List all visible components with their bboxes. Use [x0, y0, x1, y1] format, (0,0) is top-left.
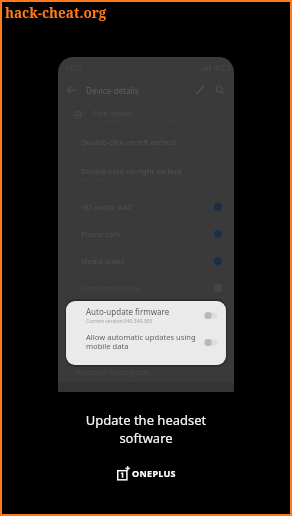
button[interactable]: Media audio [58, 250, 234, 272]
staticText: Allow automatic updates using mobile dat… [86, 332, 204, 352]
button[interactable]: Auto-update firmware [66, 302, 226, 328]
button[interactable]: HD audio: AAC [58, 196, 234, 218]
staticText: Function Description [77, 367, 150, 377]
button[interactable]: Allow automatic updates using mobile dat… [66, 329, 226, 355]
other: Search [215, 85, 225, 95]
staticText: Find device [93, 108, 133, 118]
button[interactable]: Phone calls [58, 223, 234, 245]
other: Back [66, 84, 78, 96]
staticText: Auto-update firmware [86, 306, 170, 317]
staticText: Update the headset software [0, 411, 292, 447]
other: Edit [195, 85, 205, 95]
staticText: Current version:340.340.305 [86, 318, 153, 325]
staticText: Double-click on right earbud [81, 166, 182, 176]
staticText: Media audio [81, 256, 125, 266]
staticText: Double-click on left earbud [81, 137, 176, 147]
staticText: Device details [86, 85, 139, 96]
staticText: HD audio: AAC [81, 202, 133, 212]
staticText: ONEPLUS [132, 467, 176, 479]
staticText: Phone calls [81, 229, 121, 239]
staticText: hack-cheat.org [5, 4, 107, 22]
